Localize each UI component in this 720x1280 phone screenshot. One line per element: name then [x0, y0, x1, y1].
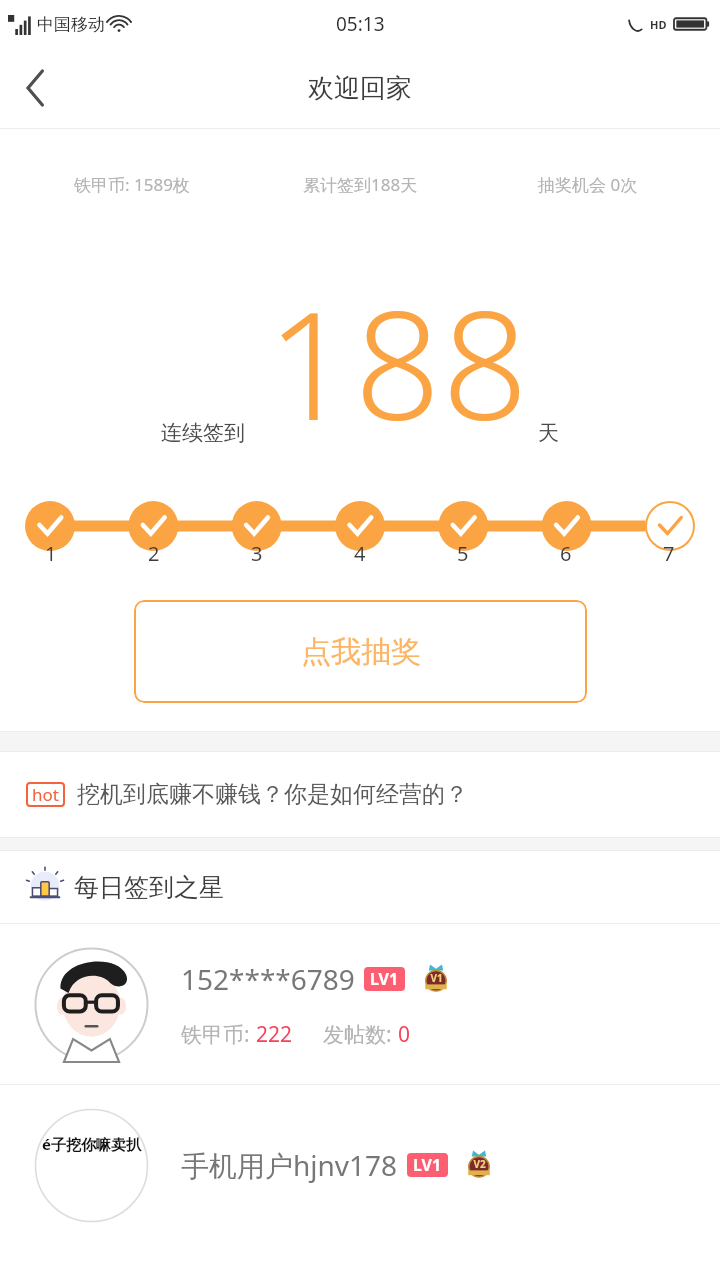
- staticText: 铁甲币:: [181, 1020, 256, 1049]
- staticText: 连续签到: [161, 420, 245, 446]
- staticText: 188: [267, 260, 530, 464]
- staticText: 7: [663, 540, 675, 567]
- staticText: 6: [560, 540, 572, 567]
- staticText: HD: [650, 17, 667, 32]
- staticText: 4: [354, 540, 366, 567]
- staticText: 2: [148, 540, 160, 567]
- button[interactable]: Back: [0, 52, 72, 124]
- staticText: 152****6789: [181, 960, 355, 998]
- staticText: 每日签到之星: [74, 872, 224, 903]
- staticText: V2: [473, 1157, 486, 1171]
- staticText: 欢迎回家: [308, 72, 412, 105]
- staticText: 1: [45, 540, 57, 567]
- staticText: LV1: [370, 968, 399, 990]
- staticText: 发帖数:: [323, 1020, 398, 1049]
- staticText: 手机用户hjnv178: [181, 1146, 398, 1184]
- staticText: 抽奖机会 0次: [538, 173, 638, 196]
- staticText: 3: [251, 540, 263, 567]
- staticText: 天: [538, 420, 559, 446]
- staticText: hot: [32, 783, 59, 806]
- staticText: 累计签到188天: [303, 173, 418, 196]
- button[interactable]: 点我抽奖: [134, 600, 587, 703]
- staticText: 点我抽奖: [301, 633, 421, 671]
- button[interactable]: 152****6789: [0, 924, 720, 1084]
- button[interactable]: hot: [0, 752, 720, 837]
- staticText: 05:13: [336, 11, 385, 37]
- staticText: V1: [430, 971, 443, 985]
- staticText: 挖机到底赚不赚钱？你是如何经营的？: [77, 780, 468, 809]
- staticText: LV1: [413, 1154, 442, 1176]
- staticText: 0: [398, 1020, 411, 1049]
- button[interactable]: é子挖你嘛卖扒: [0, 1085, 720, 1245]
- staticText: 5: [457, 540, 469, 567]
- staticText: 铁甲币: 1589枚: [74, 173, 190, 196]
- staticText: 中国移动: [37, 14, 105, 35]
- staticText: é子挖你嘛卖扒: [42, 1134, 141, 1154]
- staticText: 222: [256, 1020, 293, 1049]
